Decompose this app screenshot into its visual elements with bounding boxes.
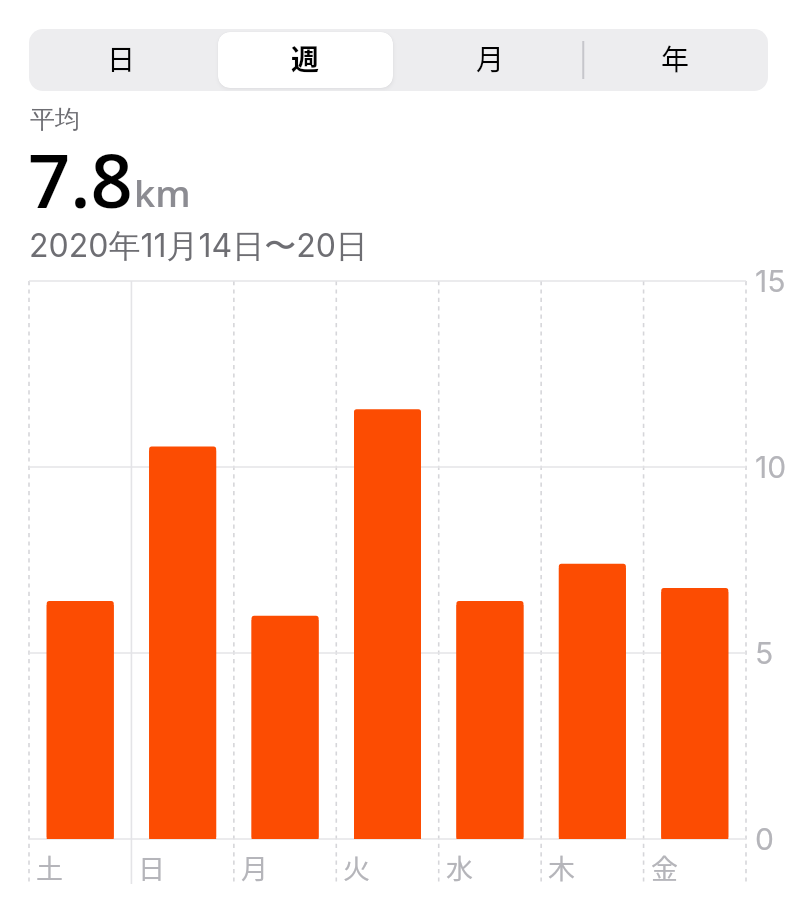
staticText: 水	[446, 848, 473, 887]
staticText: 金	[651, 848, 678, 887]
staticText: 0	[755, 821, 774, 857]
staticText: 日	[107, 38, 136, 79]
staticText: 月	[241, 848, 268, 887]
button[interactable]: 週	[213, 29, 398, 91]
staticText: 木	[548, 848, 575, 887]
staticText: km	[134, 167, 191, 217]
staticText: 7.8	[28, 129, 133, 230]
staticText: 日	[138, 848, 165, 887]
staticText: 火	[343, 848, 370, 887]
staticText: 週	[291, 38, 320, 79]
staticText: 5	[755, 635, 774, 671]
staticText: 平均	[30, 104, 80, 135]
staticText: 15	[755, 263, 786, 299]
staticText: 10	[755, 449, 787, 485]
button[interactable]: 年	[583, 29, 768, 91]
staticText: 年	[661, 38, 690, 79]
staticText: 土	[36, 848, 63, 887]
button[interactable]: 日	[29, 29, 213, 91]
staticText: 月	[476, 38, 505, 79]
staticText: 2020年11月14日〜20日	[29, 226, 368, 267]
button[interactable]: 月	[398, 29, 583, 91]
